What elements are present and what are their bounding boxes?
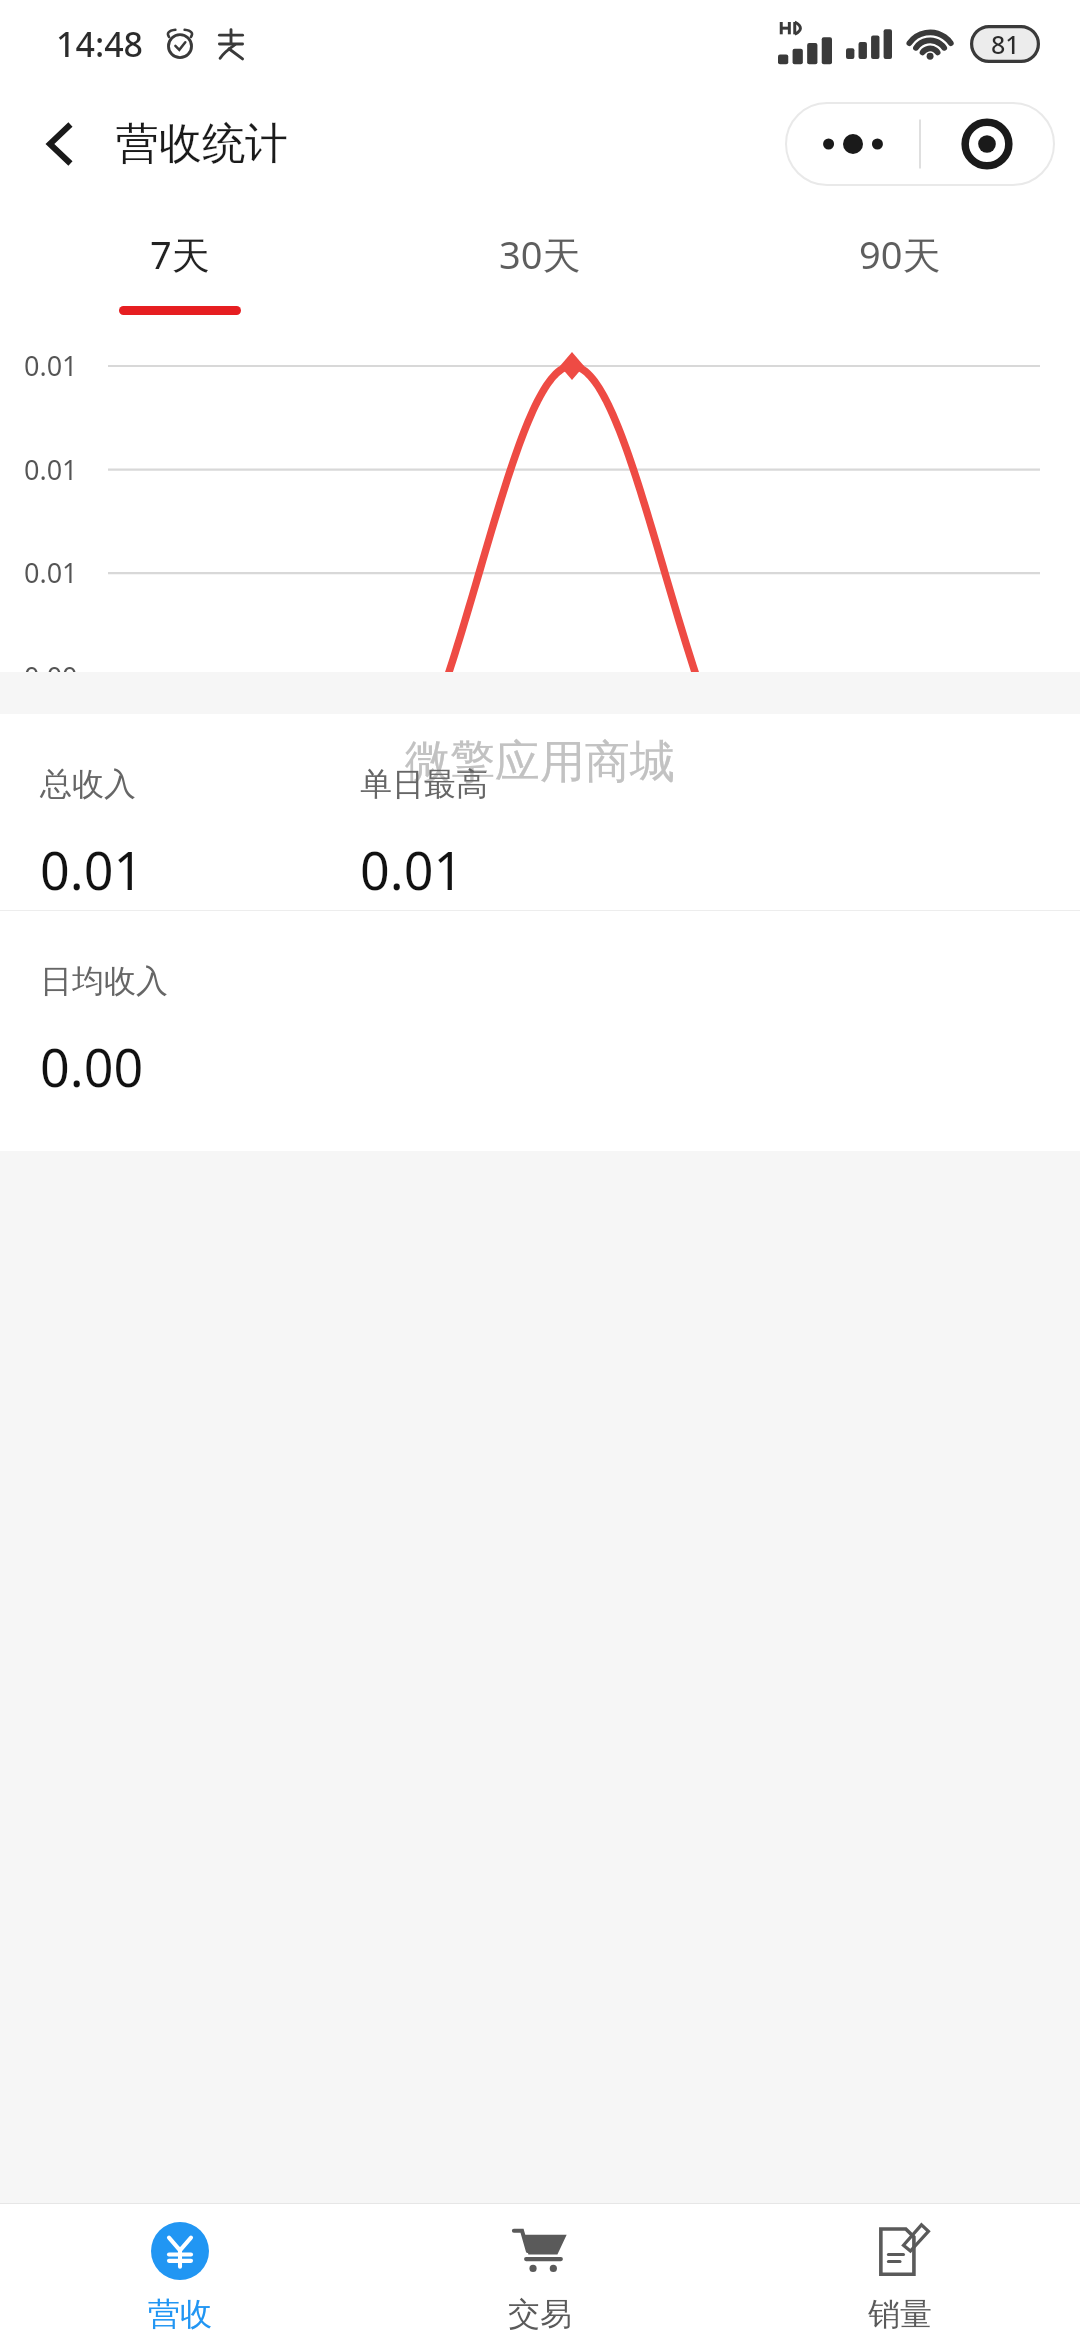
staticText: 0.01	[24, 451, 78, 488]
staticText: 总收入	[40, 764, 136, 804]
staticText: 日均收入	[40, 961, 168, 1001]
staticText: 0.00	[24, 658, 78, 695]
button[interactable]: 营收	[0, 2204, 360, 2340]
staticText: 30天	[499, 228, 581, 280]
staticText: 销量	[868, 2294, 932, 2334]
staticText: 0.00	[40, 1031, 144, 1102]
button[interactable]: 交易	[360, 2204, 720, 2340]
button[interactable]: 销量	[720, 2204, 1080, 2340]
staticText: 81	[991, 27, 1020, 61]
staticText: 0.00	[24, 761, 78, 798]
staticText: 交易	[508, 2294, 572, 2334]
staticText: 0.01	[24, 554, 78, 591]
staticText: 0.00	[24, 865, 78, 902]
staticText: 单日最高	[360, 764, 488, 804]
staticText: 营收	[148, 2294, 212, 2334]
button[interactable]: 90天	[720, 200, 1080, 336]
button[interactable]: 返回	[22, 106, 98, 182]
staticText: 营收统计	[116, 117, 288, 171]
staticText: 0.01	[360, 834, 464, 905]
button[interactable]: 7天	[0, 200, 360, 336]
button[interactable]: 胶囊按钮	[920, 103, 1054, 185]
staticText: 0.01	[24, 347, 78, 384]
staticText: 7天	[150, 228, 210, 280]
staticText: 90天	[859, 228, 941, 280]
button[interactable]: 30天	[360, 200, 720, 336]
staticText: 微擎应用商城	[405, 734, 675, 791]
staticText: 0.01	[40, 834, 144, 905]
button[interactable]: 更多	[786, 103, 920, 185]
staticText: 14:48	[56, 21, 144, 67]
